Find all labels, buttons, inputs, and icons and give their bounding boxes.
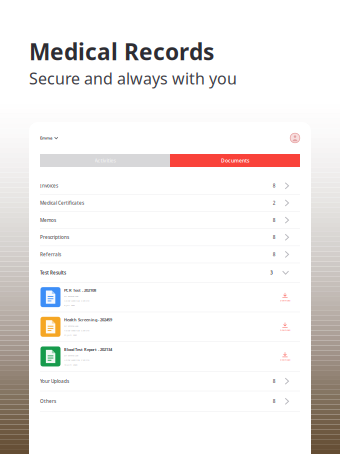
button[interactable]: PCR Test - 202108 [29, 283, 311, 312]
button[interactable]: Memos [29, 212, 311, 228]
staticText: Secure and always with you [29, 67, 237, 89]
staticText: Dr Emma Lee [64, 294, 78, 298]
staticText: Activities [94, 157, 115, 164]
button[interactable]: Documents [170, 154, 300, 167]
staticText: 8 [273, 398, 276, 404]
staticText: Memos [40, 217, 56, 223]
staticText: Download [280, 299, 290, 302]
staticText: 8 [273, 234, 276, 240]
staticText: Abby Medical Centre [64, 299, 89, 302]
staticText: Blood Test Report - 202134 [64, 347, 112, 352]
staticText: Others [40, 398, 56, 404]
button[interactable]: Your Uploads [29, 371, 311, 391]
staticText: PCR Test - 202108 [64, 287, 96, 293]
button[interactable]: Health Screening - 202459 [29, 312, 311, 341]
staticText: Dr Emma Lee [64, 354, 78, 357]
staticText: 8 [273, 183, 276, 189]
staticText: Documents [221, 157, 249, 164]
staticText: Prescriptions [40, 234, 69, 240]
staticText: Abby Medical Centre [64, 358, 89, 362]
staticText: Health Screening - 202459 [64, 317, 112, 322]
button[interactable]: Medical Certificates [29, 195, 311, 211]
staticText: Download [280, 328, 290, 331]
staticText: Referrals [40, 251, 61, 258]
button[interactable]: Emma [40, 135, 58, 141]
staticText: 18 Jun 2020 [64, 363, 77, 366]
button[interactable]: Prescriptions [29, 229, 311, 245]
staticText: 8 [273, 378, 276, 384]
button[interactable]: Others [29, 391, 311, 411]
staticText: Your Uploads [40, 378, 69, 384]
staticText: Invoices [40, 183, 58, 189]
staticText: Dr Emma Lee [64, 324, 78, 327]
staticText: 8 Jul 2021 [64, 303, 75, 307]
button[interactable]: Alerts [290, 133, 300, 143]
staticText: Emma [40, 135, 52, 141]
staticText: Test Results [40, 270, 66, 276]
staticText: Medical Certificates [40, 200, 84, 206]
staticText: Download [280, 358, 290, 361]
staticText: 21 Jun 2021 [64, 333, 77, 336]
button[interactable]: Test Results [29, 263, 311, 282]
staticText: Medical Records [29, 36, 214, 67]
button[interactable]: Invoices [29, 177, 311, 194]
button[interactable]: Referrals [29, 246, 311, 263]
staticText: 8 [273, 251, 276, 258]
staticText: 3 [270, 270, 273, 276]
staticText: Abby Medical Centre [64, 328, 89, 332]
staticText: 2 [273, 200, 276, 206]
button[interactable]: Blood Test Report - 202134 [29, 342, 311, 371]
staticText: 8 [273, 217, 276, 223]
